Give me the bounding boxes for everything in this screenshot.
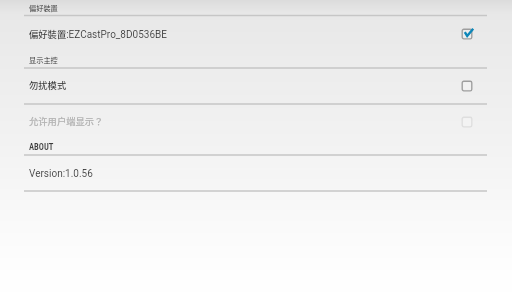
other: Allow client display checkbox [459, 114, 475, 130]
staticText: 偏好裝置 [29, 3, 58, 13]
staticText: 允许用户端显示？ [29, 114, 104, 127]
staticText: ABOUT [29, 142, 54, 152]
other: Do not disturb checkbox [459, 78, 475, 94]
other: Preferred device checkbox [459, 26, 475, 42]
staticText: 偏好裝置:EZCastPro_8D0536BE [29, 27, 167, 40]
button[interactable]: 勿扰模式 [0, 68, 512, 104]
staticText: 显示主控 [29, 55, 58, 65]
staticText: Version:1.0.56 [29, 168, 93, 180]
button[interactable]: 允许用户端显示？ [0, 104, 512, 140]
staticText: 勿扰模式 [29, 78, 67, 91]
button[interactable]: 偏好裝置:EZCastPro_8D0536BE [0, 16, 512, 52]
button[interactable]: Version:1.0.56 [0, 155, 512, 191]
